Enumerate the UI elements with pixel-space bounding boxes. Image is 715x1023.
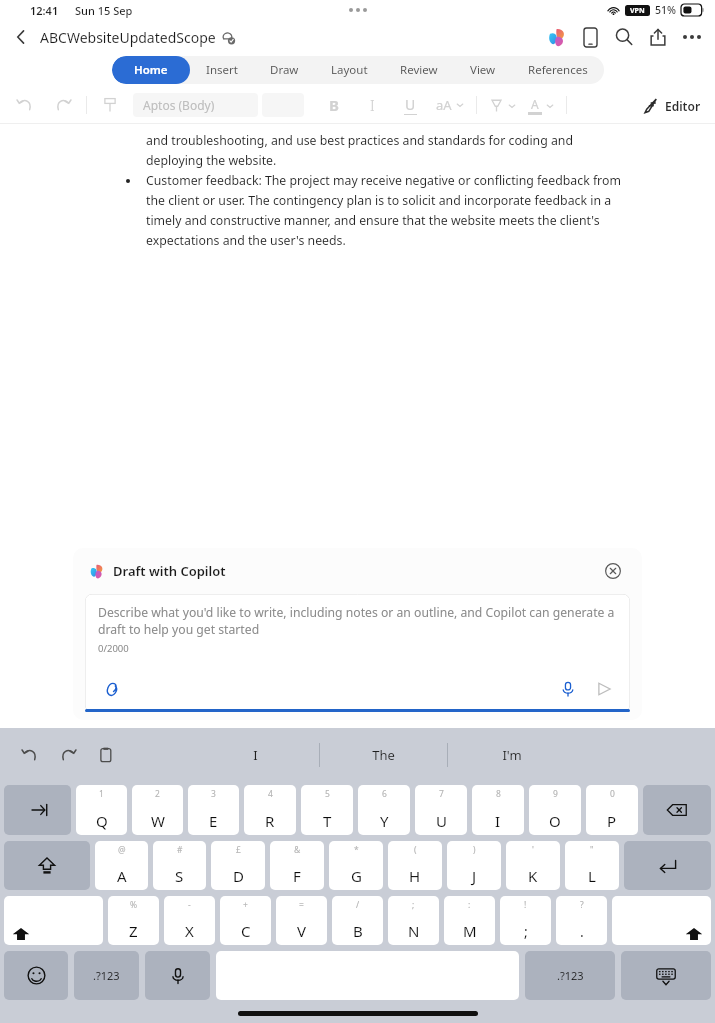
button[interactable]: 4: [244, 785, 296, 835]
button[interactable]: Review: [384, 56, 454, 84]
button[interactable]: Hide keyboard: [621, 951, 711, 1000]
button[interactable]: I'm: [448, 728, 575, 782]
button[interactable]: (: [388, 841, 442, 890]
button[interactable]: *: [329, 841, 383, 890]
button[interactable]: Undo: [10, 90, 40, 120]
staticText: Review: [400, 62, 438, 78]
button[interactable]: Editor: [643, 97, 705, 114]
staticText: VPN: [630, 6, 645, 16]
staticText: !: [524, 899, 527, 911]
button[interactable]: Layout: [315, 56, 384, 84]
button[interactable]: 0: [586, 785, 638, 835]
button[interactable]: ABCWebsiteUpdatedScope: [40, 28, 236, 47]
button[interactable]: View: [454, 56, 512, 84]
staticText: @: [118, 844, 126, 856]
staticText: Q: [96, 811, 108, 831]
button[interactable]: Font color: [528, 96, 554, 115]
staticText: U: [405, 95, 416, 114]
button[interactable]: Shift: [4, 896, 103, 945]
button[interactable]: 3: [188, 785, 239, 835]
button[interactable]: 5: [301, 785, 353, 835]
button[interactable]: Mobile view: [573, 20, 607, 54]
button[interactable]: +: [220, 896, 271, 945]
button[interactable]: Return: [624, 841, 711, 890]
button[interactable]: Insert: [190, 56, 254, 84]
button[interactable]: 9: [529, 785, 581, 835]
button[interactable]: I: [192, 728, 319, 782]
button[interactable]: I: [358, 91, 386, 119]
button[interactable]: %: [108, 896, 159, 945]
button[interactable]: 8: [472, 785, 524, 835]
button[interactable]: Redo: [48, 90, 78, 120]
button[interactable]: B: [320, 91, 348, 119]
staticText: Home: [134, 62, 168, 78]
button[interactable]: #: [153, 841, 206, 890]
staticText: #: [177, 844, 183, 856]
button[interactable]: Send: [591, 676, 617, 702]
button[interactable]: Share: [641, 20, 675, 54]
button[interactable]: Shift: [612, 896, 711, 945]
button[interactable]: Voice input: [555, 676, 581, 702]
button[interactable]: 7: [415, 785, 467, 835]
button[interactable]: @: [95, 841, 148, 890]
button[interactable]: :: [444, 896, 495, 945]
staticText: Draw: [270, 62, 299, 78]
staticText: .: [580, 922, 584, 941]
button[interactable]: Search: [607, 20, 641, 54]
button[interactable]: Emoji: [4, 951, 68, 1000]
button[interactable]: Highlight: [489, 98, 516, 113]
button[interactable]: ?: [556, 896, 607, 945]
button[interactable]: £: [211, 841, 265, 890]
staticText: %: [130, 899, 138, 911]
button[interactable]: 6: [358, 785, 410, 835]
button[interactable]: Redo: [52, 739, 84, 771]
button[interactable]: .?123: [74, 951, 139, 1000]
staticText: U: [436, 811, 447, 831]
button[interactable]: !: [500, 896, 551, 945]
button[interactable]: =: [276, 896, 327, 945]
button[interactable]: ": [565, 841, 619, 890]
button[interactable]: .?123: [525, 951, 615, 1000]
staticText: G: [351, 866, 362, 886]
staticText: *: [354, 844, 359, 856]
button[interactable]: Format painter: [95, 90, 125, 120]
button[interactable]: Home: [112, 56, 190, 84]
button[interactable]: Back: [6, 22, 36, 52]
button[interactable]: The: [320, 728, 447, 782]
button[interactable]: Caps lock: [4, 841, 90, 890]
button[interactable]: ): [447, 841, 501, 890]
button[interactable]: References: [512, 56, 604, 84]
staticText: Y: [380, 811, 389, 831]
button[interactable]: /: [332, 896, 383, 945]
button[interactable]: Paste: [90, 739, 122, 771]
button[interactable]: U: [396, 91, 424, 119]
button[interactable]: 1: [76, 785, 127, 835]
button[interactable]: Undo: [14, 739, 46, 771]
staticText: A: [531, 96, 539, 112]
staticText: -: [188, 899, 191, 911]
button[interactable]: Close: [600, 558, 626, 584]
button[interactable]: Dictate: [145, 951, 210, 1000]
button[interactable]: Copilot: [539, 20, 573, 54]
button[interactable]: Backspace: [643, 785, 711, 835]
button[interactable]: Aptos (Body): [133, 93, 258, 117]
staticText: ": [590, 844, 594, 856]
staticText: M: [463, 921, 477, 941]
button[interactable]: ;: [388, 896, 439, 945]
staticText: C: [241, 921, 251, 941]
staticText: N: [408, 921, 420, 941]
staticText: O: [549, 811, 561, 831]
staticText: 6: [382, 788, 387, 800]
button[interactable]: ': [506, 841, 560, 890]
button[interactable]: More options: [675, 20, 709, 54]
button[interactable]: Attach file: [98, 676, 124, 702]
button[interactable]: 2: [132, 785, 183, 835]
button[interactable]: Tab: [4, 785, 71, 835]
button[interactable]: aA: [436, 96, 464, 114]
button[interactable]: &: [270, 841, 324, 890]
button[interactable]: Draw: [254, 56, 315, 84]
staticText: Layout: [331, 62, 368, 78]
button[interactable]: -: [164, 896, 215, 945]
